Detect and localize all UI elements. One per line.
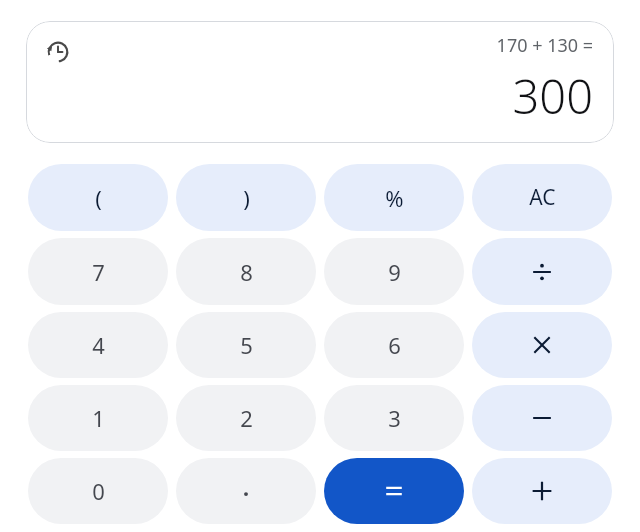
button[interactable]: History xyxy=(26,21,614,143)
button[interactable]: 6 xyxy=(324,312,464,378)
staticText: 3 xyxy=(388,403,401,433)
staticText: 1 xyxy=(92,403,105,433)
button[interactable]: Divide xyxy=(472,238,612,305)
staticText: 0 xyxy=(92,476,105,506)
button[interactable]: 1 xyxy=(28,385,168,451)
staticText: 9 xyxy=(388,257,401,287)
button[interactable]: History xyxy=(40,34,76,70)
staticText: 170 + 130 = xyxy=(496,33,593,58)
button[interactable]: ) xyxy=(176,164,316,231)
button[interactable]: 5 xyxy=(176,312,316,378)
button[interactable]: 3 xyxy=(324,385,464,451)
staticText: ( xyxy=(95,183,102,213)
button[interactable]: 0 xyxy=(28,458,168,524)
other: History xyxy=(45,39,71,65)
staticText: % xyxy=(385,183,404,213)
staticText: 300 xyxy=(512,64,593,128)
staticText: ) xyxy=(243,183,250,213)
button[interactable]: Equals xyxy=(324,458,464,524)
staticText: 4 xyxy=(92,330,105,360)
button[interactable]: Multiply xyxy=(472,312,612,378)
button[interactable]: Decimal point xyxy=(176,458,316,524)
button[interactable]: 2 xyxy=(176,385,316,451)
button[interactable]: % xyxy=(324,164,464,231)
button[interactable]: 7 xyxy=(28,238,168,305)
staticText: AC xyxy=(529,183,556,212)
staticText: 6 xyxy=(388,330,401,360)
button[interactable]: 4 xyxy=(28,312,168,378)
staticText: 5 xyxy=(240,330,253,360)
button[interactable]: 8 xyxy=(176,238,316,305)
button[interactable]: Subtract xyxy=(472,385,612,451)
staticText: 7 xyxy=(92,257,105,287)
button[interactable]: AC xyxy=(472,164,612,231)
button[interactable]: ( xyxy=(28,164,168,231)
staticText: 2 xyxy=(240,403,253,433)
button[interactable]: 9 xyxy=(324,238,464,305)
staticText: 8 xyxy=(240,257,253,287)
button[interactable]: Add xyxy=(472,458,612,524)
